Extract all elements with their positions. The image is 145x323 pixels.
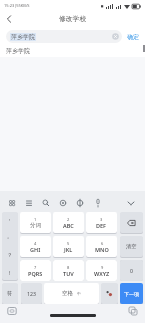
staticText: 中 (77, 291, 81, 296)
staticText: GHI (30, 246, 41, 253)
button[interactable] (6, 15, 13, 23)
button[interactable]: 萍乡学院 (0, 44, 145, 57)
button[interactable]: 萍乡学院 (6, 30, 122, 43)
button[interactable]: ， (2, 212, 18, 280)
button[interactable]: 下一项 (120, 283, 143, 304)
button[interactable]: 9 (86, 260, 117, 281)
button[interactable]: 空格 (44, 283, 99, 304)
button[interactable]: 8 (53, 260, 84, 281)
button[interactable]: 3 (86, 212, 117, 233)
staticText: 1 (34, 217, 37, 222)
button[interactable]: 1 (20, 212, 51, 233)
staticText: 分词 (30, 222, 41, 229)
staticText: 下一项 (124, 291, 139, 297)
staticText: 萍乡学院 (11, 33, 35, 41)
staticText: 15:23∣55KB/S (4, 3, 30, 8)
button[interactable]: 5 (53, 236, 84, 257)
staticText: PQRS (28, 270, 43, 277)
staticText: JKL (64, 246, 73, 253)
staticText: 4 (34, 241, 37, 246)
button[interactable]: 符 (2, 283, 18, 304)
staticText: 。 (7, 233, 13, 240)
staticText: 修改学校 (59, 14, 87, 23)
staticText: ？ (7, 252, 13, 259)
staticText: 2 (67, 217, 70, 222)
button[interactable]: 2 (53, 212, 84, 233)
button[interactable]: 123 (21, 283, 42, 304)
staticText: 8 (67, 265, 70, 270)
staticText: 3 (100, 217, 103, 222)
staticText: 9 (101, 265, 104, 270)
staticText: 确定 (127, 33, 139, 41)
button[interactable] (0, 196, 145, 210)
staticText: MNO (95, 246, 109, 253)
button[interactable] (7, 306, 17, 316)
staticText: 5 (67, 241, 70, 246)
staticText: 清空 (126, 243, 137, 250)
button[interactable]: 0 (120, 260, 143, 281)
staticText: ， (7, 215, 13, 222)
staticText: 符 (7, 290, 13, 297)
staticText: ABC (63, 222, 74, 229)
staticText: 空格 (62, 290, 73, 297)
staticText: 6 (101, 241, 104, 246)
button[interactable]: 确定 (124, 30, 142, 43)
button[interactable]: 7 (20, 260, 51, 281)
staticText: 123 (27, 290, 36, 297)
button[interactable]: 6 (86, 236, 117, 257)
button[interactable] (120, 212, 143, 233)
button[interactable]: 清空 (120, 236, 143, 257)
button[interactable] (128, 306, 138, 316)
staticText: ！ (7, 270, 13, 277)
staticText: DEF (96, 222, 107, 229)
button[interactable]: 4 (20, 236, 51, 257)
staticText: TUV (63, 270, 74, 277)
button[interactable] (101, 283, 118, 304)
staticText: 0 (130, 267, 133, 274)
staticText: 萍乡学院 (6, 47, 30, 55)
staticText: WXYZ (94, 270, 110, 277)
staticText: 7 (34, 265, 37, 270)
